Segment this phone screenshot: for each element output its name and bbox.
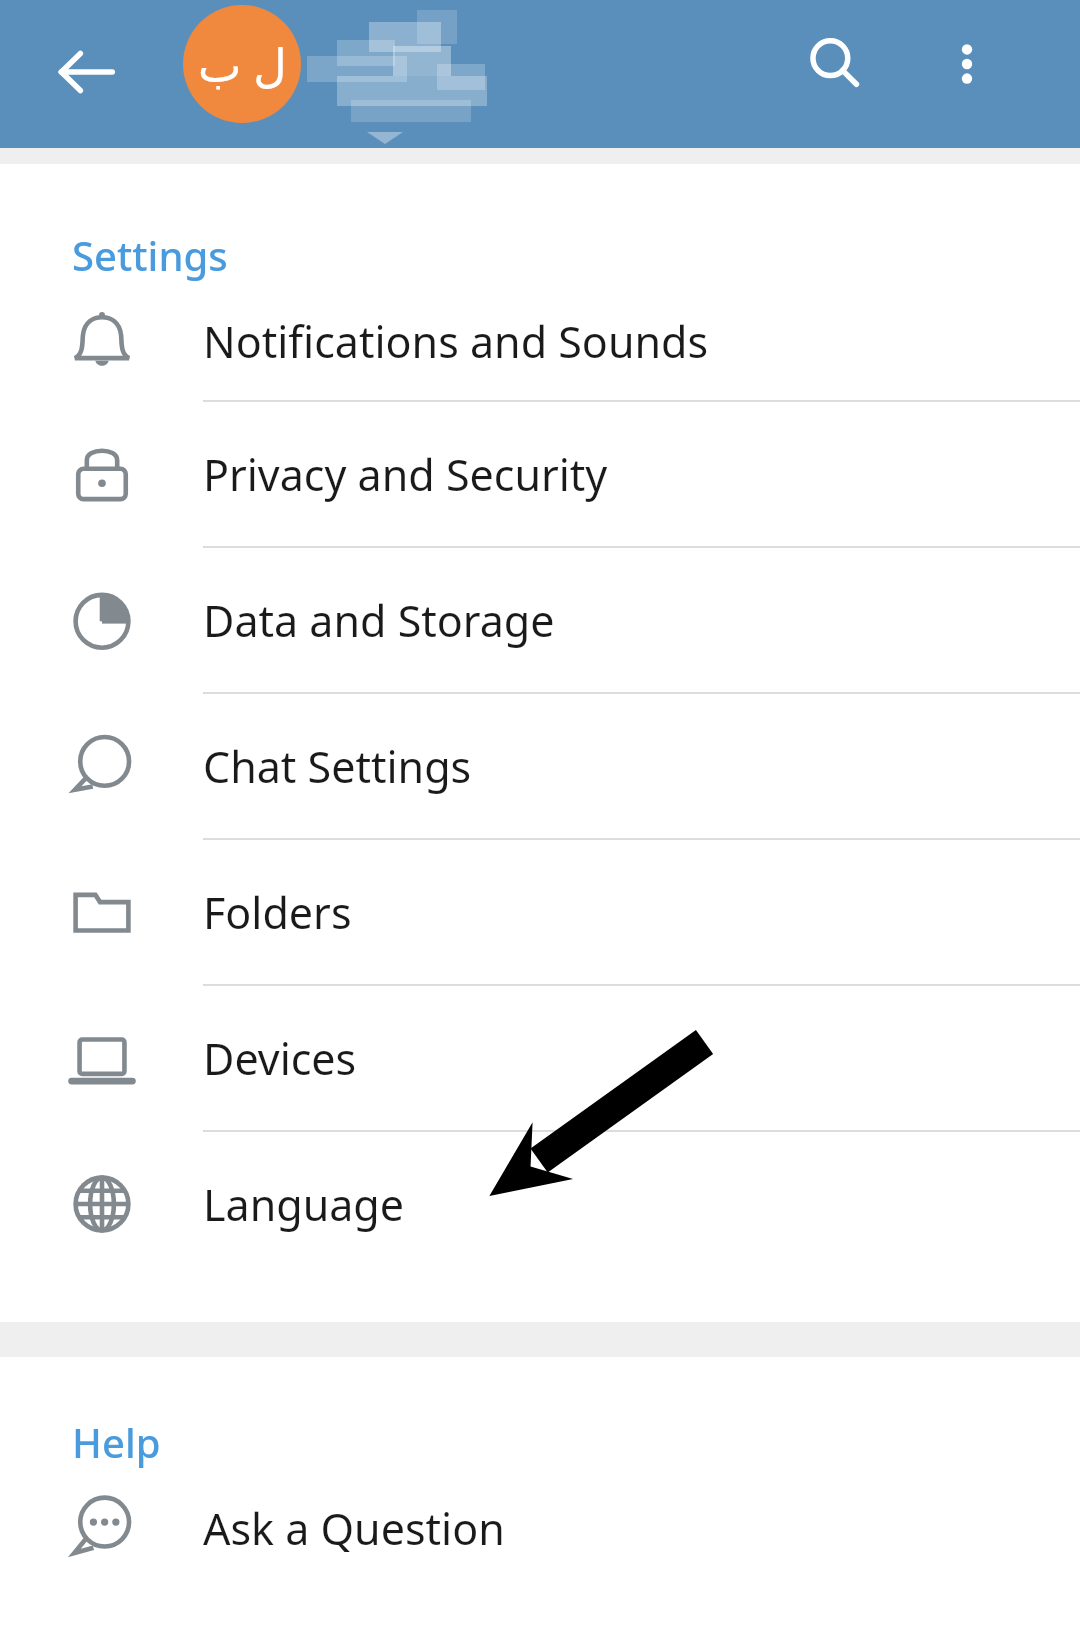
- staticText: Privacy and Security: [203, 445, 608, 504]
- button[interactable]: ل ب: [183, 0, 603, 148]
- button[interactable]: Data and Storage: [0, 548, 1080, 692]
- button[interactable]: More options: [912, 9, 1022, 119]
- staticText: Chat Settings: [203, 737, 472, 796]
- staticText: ل ب: [198, 33, 287, 96]
- staticText: Data and Storage: [203, 591, 555, 650]
- staticText: Ask a Question: [203, 1499, 505, 1558]
- button[interactable]: Folders: [0, 840, 1080, 984]
- staticText: Folders: [203, 883, 352, 942]
- button[interactable]: Privacy and Security: [0, 402, 1080, 546]
- button[interactable]: Chat Settings: [0, 694, 1080, 838]
- button[interactable]: Notifications and Sounds: [0, 282, 1080, 400]
- button[interactable]: Search: [780, 9, 890, 119]
- staticText: Devices: [203, 1029, 357, 1088]
- button[interactable]: Language: [0, 1132, 1080, 1276]
- button[interactable]: Ask a Question: [0, 1469, 1080, 1587]
- staticText: Help: [72, 1415, 161, 1469]
- button[interactable]: Devices: [0, 986, 1080, 1130]
- staticText: Language: [203, 1175, 405, 1234]
- staticText: Settings: [72, 228, 228, 282]
- button[interactable]: Back: [36, 22, 136, 122]
- staticText: Notifications and Sounds: [203, 312, 709, 371]
